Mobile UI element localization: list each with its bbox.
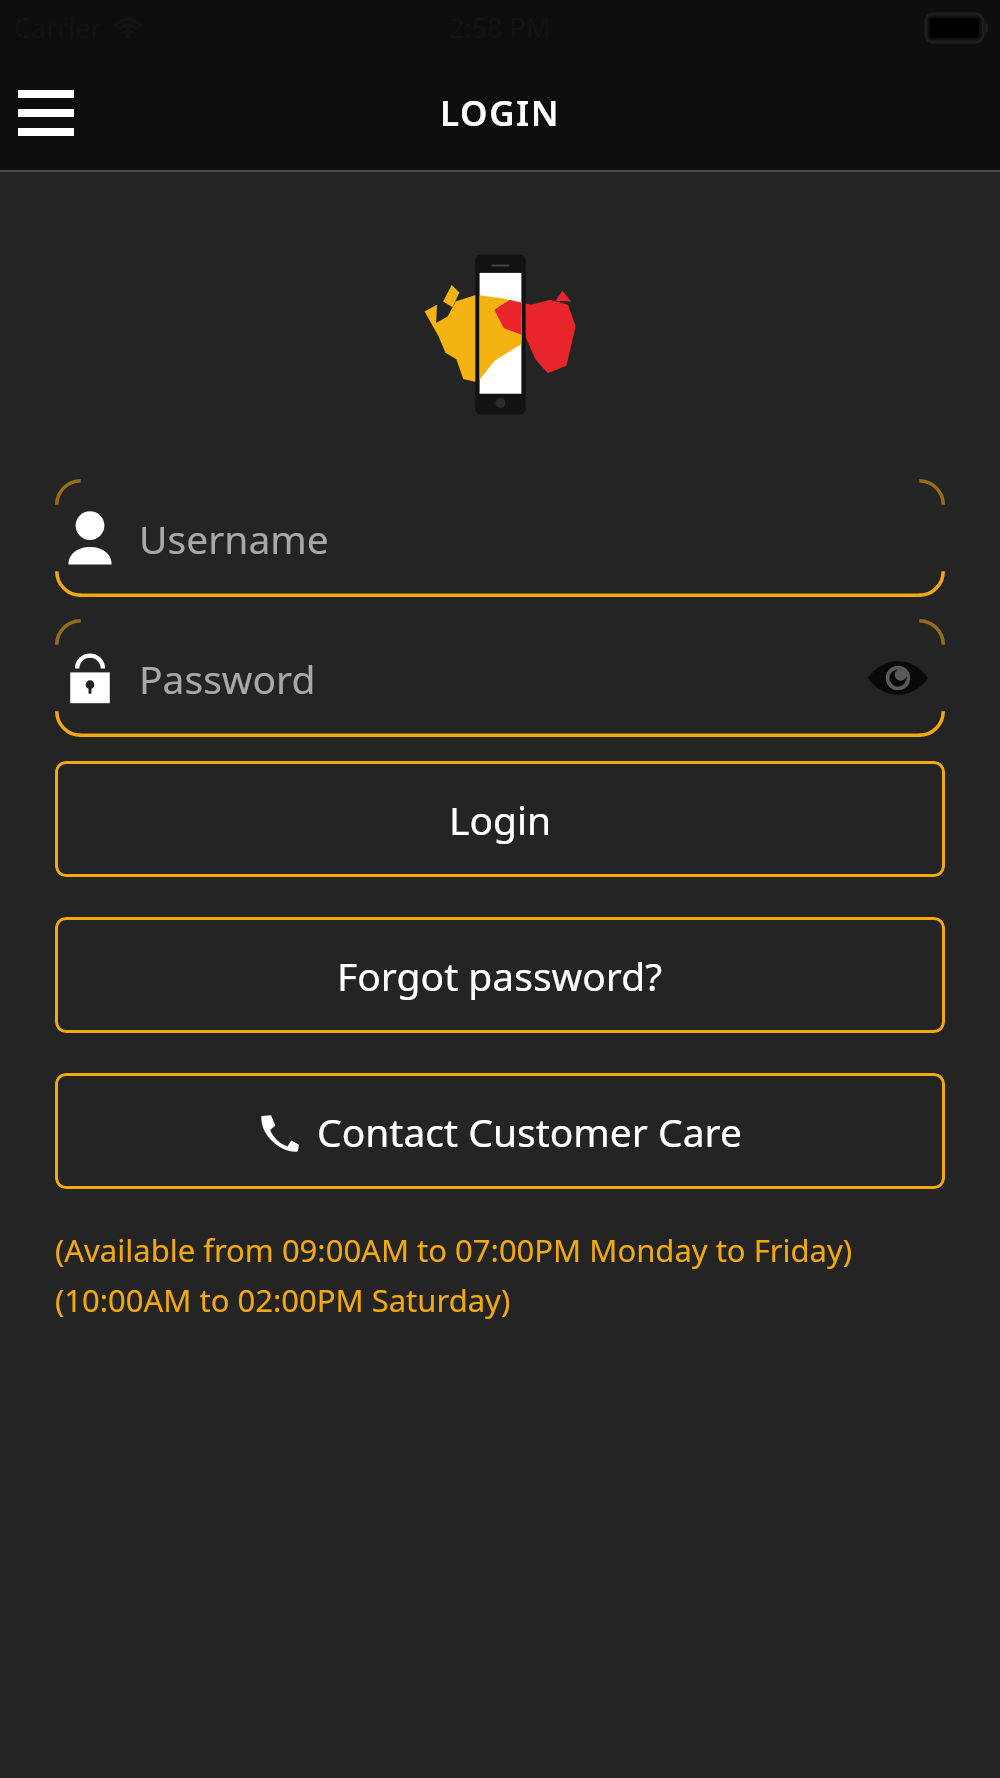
button[interactable]: Contact Customer Care (55, 1073, 945, 1189)
staticText: Contact Customer Care (317, 1105, 742, 1158)
button[interactable]: Forgot password? (55, 917, 945, 1033)
staticText: Forgot password? (337, 949, 663, 1002)
button[interactable]: Password (55, 619, 945, 737)
staticText: Username (139, 512, 329, 565)
staticText: LOGIN (440, 89, 561, 137)
staticText: Login (449, 793, 552, 846)
button[interactable]: Username (55, 479, 945, 597)
button[interactable]: Show password (855, 635, 941, 721)
staticText: (Available from 09:00AM to 07:00PM Monda… (55, 1229, 945, 1321)
button[interactable]: Open navigation menu (0, 67, 92, 159)
button[interactable]: Login (55, 761, 945, 877)
staticText: Password (139, 652, 316, 705)
